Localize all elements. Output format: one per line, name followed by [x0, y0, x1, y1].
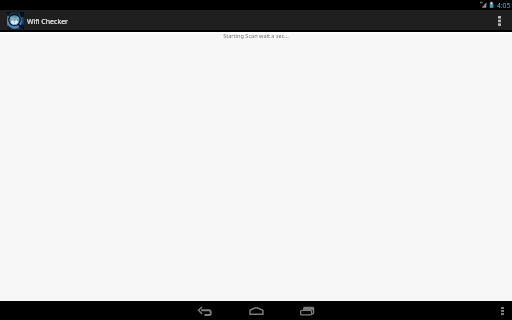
- staticText: Wifi Checker: [27, 17, 68, 27]
- button[interactable]: Recent apps: [291, 301, 323, 320]
- button[interactable]: More options: [491, 301, 512, 320]
- staticText: 4:05: [497, 1, 511, 10]
- button[interactable]: Home: [240, 301, 272, 320]
- button[interactable]: Back: [189, 301, 221, 320]
- staticText: Starting Scan wait a sec...: [0, 32, 512, 40]
- button[interactable]: Wifi Checker: [0, 10, 74, 30]
- button[interactable]: More options: [488, 10, 512, 30]
